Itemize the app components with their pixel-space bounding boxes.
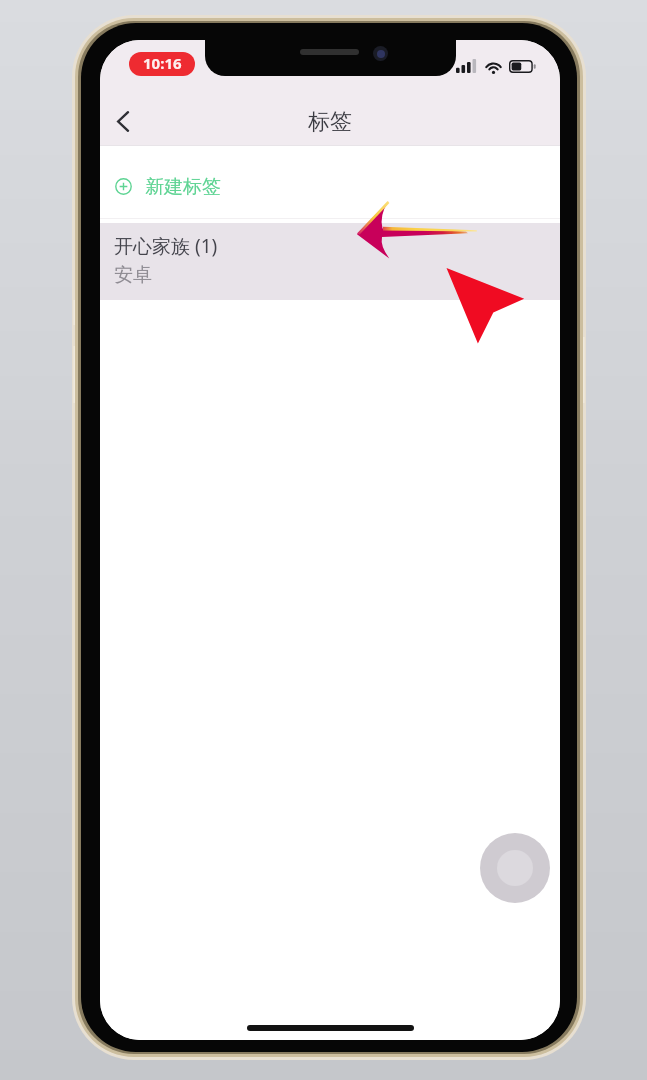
button[interactable]: 新建标签 bbox=[100, 146, 560, 218]
staticText: 新建标签 bbox=[145, 175, 221, 199]
button[interactable]: Back bbox=[103, 101, 143, 141]
button[interactable]: 开心家族 (1) bbox=[100, 223, 560, 300]
staticText: 安卓 bbox=[114, 263, 152, 287]
staticText: 开心家族 (1) bbox=[114, 233, 218, 259]
staticText: 10:16 bbox=[143, 53, 182, 73]
staticText: 标签 bbox=[308, 108, 352, 136]
button[interactable]: AssistiveTouch bbox=[480, 833, 550, 903]
